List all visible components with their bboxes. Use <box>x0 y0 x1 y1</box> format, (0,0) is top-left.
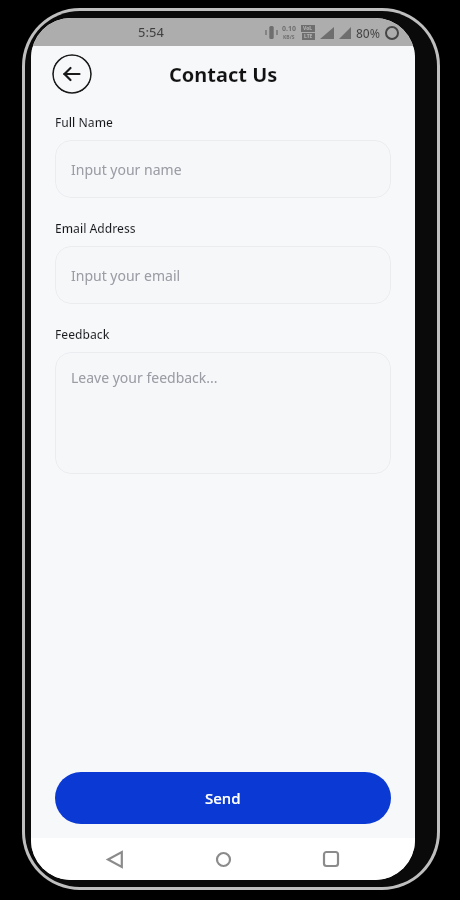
staticText: LTE <box>304 33 313 40</box>
button[interactable]: Home <box>199 838 247 880</box>
staticText: Feedback <box>55 326 110 342</box>
staticText: 5:54 <box>138 23 164 41</box>
button[interactable]: Back <box>52 54 92 94</box>
staticText: 0.10 <box>282 24 296 34</box>
button[interactable]: Full Name input <box>55 140 391 198</box>
staticText: Send <box>205 788 241 808</box>
button[interactable]: Recent apps <box>307 838 355 880</box>
staticText: Email Address <box>55 220 136 236</box>
button[interactable]: Email Address input <box>55 246 391 304</box>
staticText: Contact Us <box>169 61 278 88</box>
button[interactable]: Back <box>91 838 139 880</box>
button[interactable]: Feedback input <box>55 352 391 474</box>
staticText: Input your name <box>71 160 182 179</box>
staticText: Leave your feedback... <box>71 368 218 387</box>
staticText: Input your email <box>71 266 181 285</box>
staticText: VoL <box>303 25 313 32</box>
staticText: Full Name <box>55 114 113 130</box>
button[interactable]: Send <box>55 772 391 824</box>
staticText: KB/S <box>283 34 295 41</box>
staticText: 80% <box>356 25 380 41</box>
